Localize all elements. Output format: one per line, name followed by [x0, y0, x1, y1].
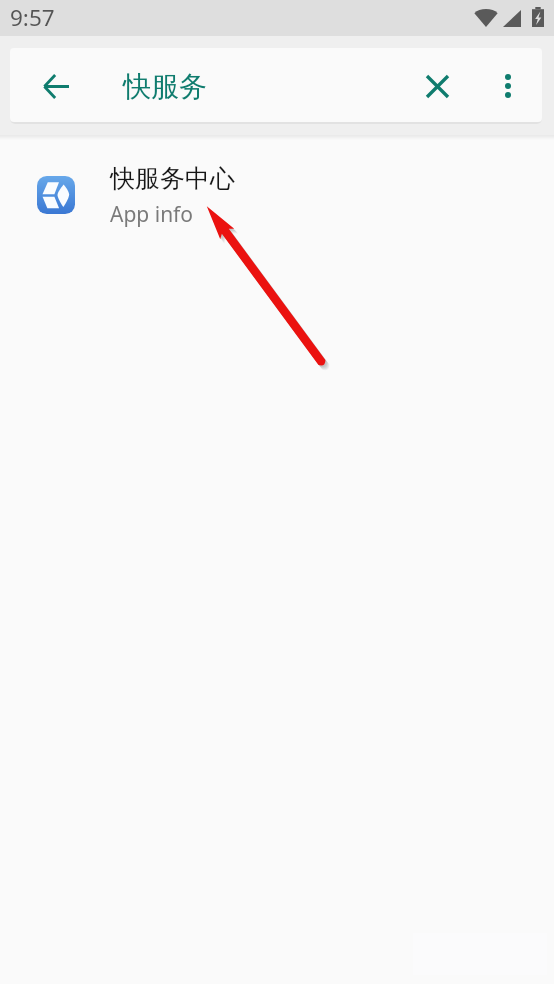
staticText: 快服务 — [123, 69, 207, 104]
button[interactable]: More options — [486, 64, 530, 108]
button[interactable]: Back — [34, 64, 78, 108]
staticText: 9:57 — [10, 2, 55, 33]
button[interactable]: 快服务中心 — [0, 148, 554, 242]
staticText: App info — [110, 200, 194, 229]
staticText: 快服务中心 — [110, 163, 235, 194]
button[interactable]: Clear — [415, 64, 459, 108]
